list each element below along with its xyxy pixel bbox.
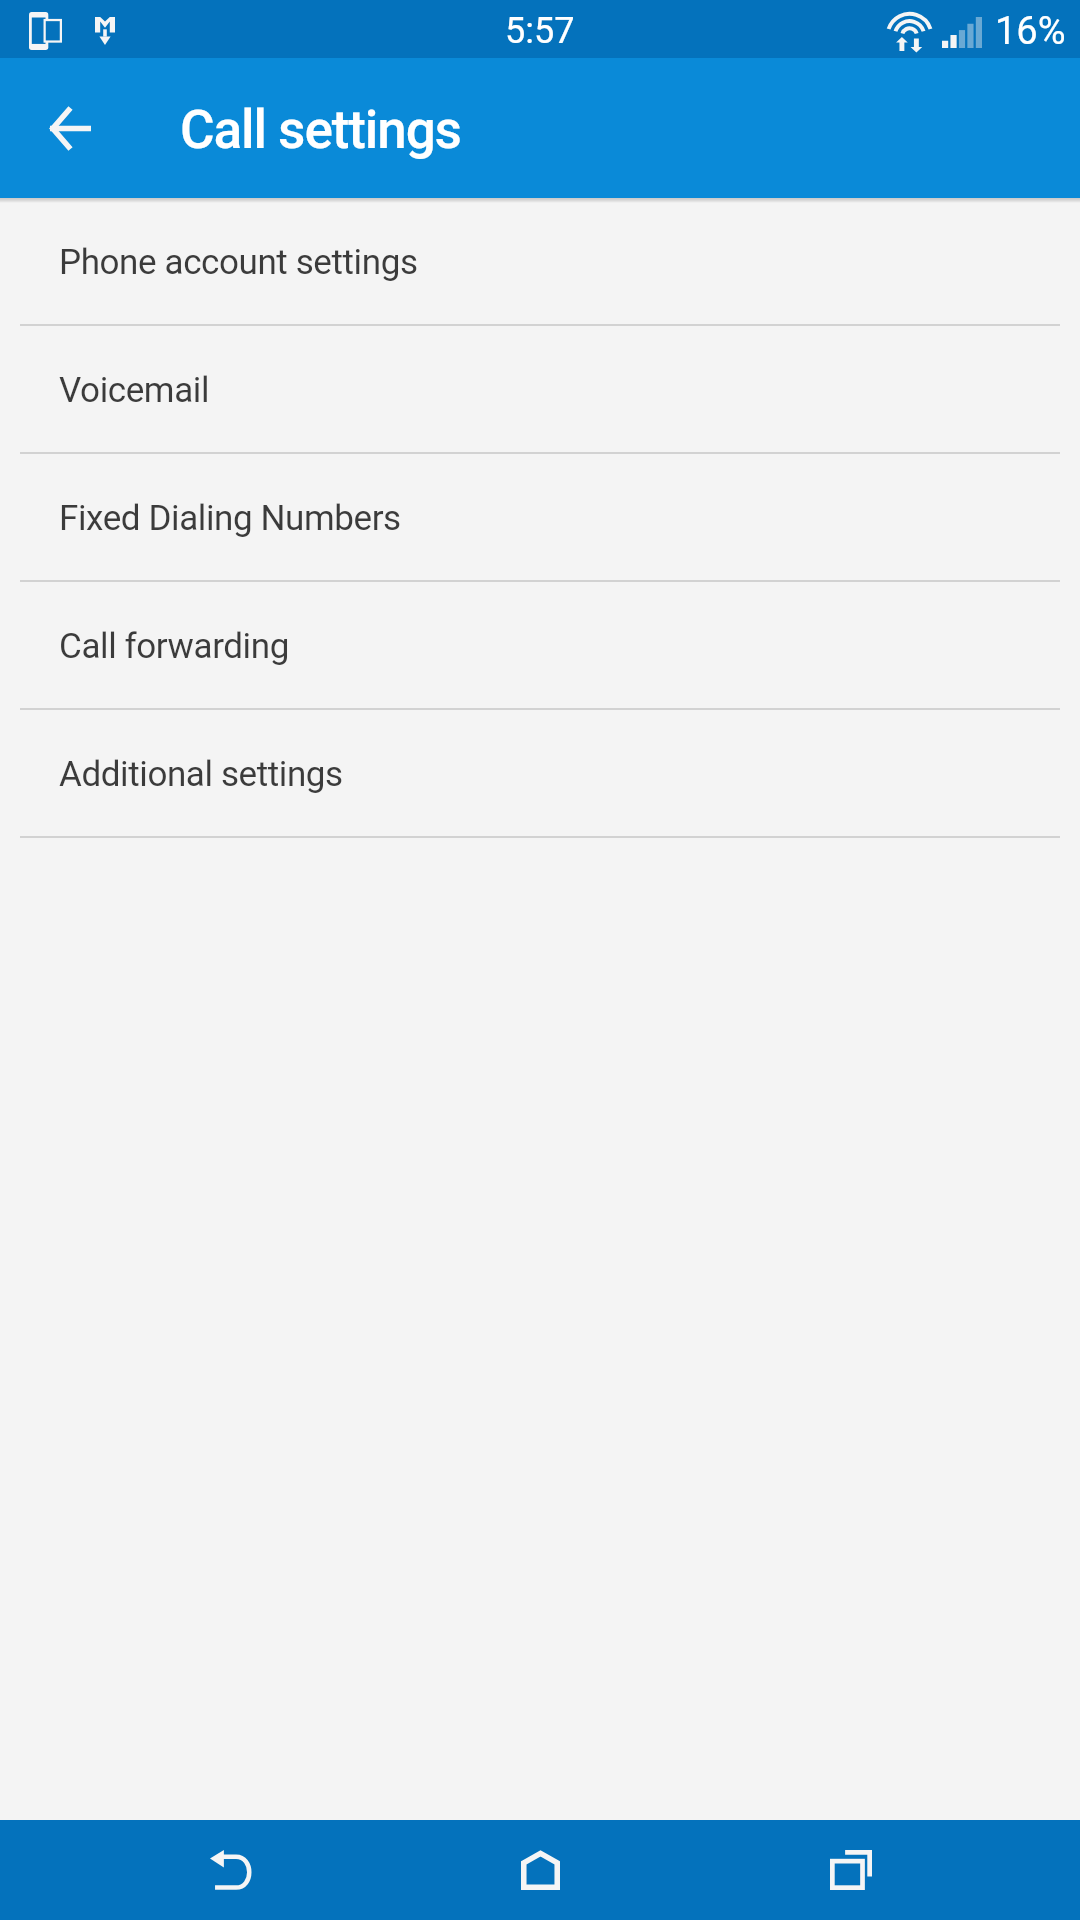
staticText: Call settings [180, 99, 461, 161]
staticText: 16% [995, 9, 1066, 54]
staticText: Voicemail [59, 370, 210, 411]
button[interactable]: Fixed Dialing Numbers [0, 454, 1080, 582]
button[interactable]: Navigate up [22, 80, 118, 176]
button[interactable]: Home [480, 1820, 600, 1920]
staticText: Additional settings [59, 754, 343, 795]
staticText: 5:57 [505, 10, 575, 52]
button[interactable]: Phone account settings [0, 198, 1080, 326]
staticText: Call forwarding [59, 626, 289, 667]
button[interactable]: Additional settings [0, 710, 1080, 838]
staticText: Phone account settings [59, 242, 418, 283]
staticText: Fixed Dialing Numbers [59, 498, 401, 539]
button[interactable]: Voicemail [0, 326, 1080, 454]
button[interactable]: Back [171, 1820, 291, 1920]
button[interactable]: Recent apps [791, 1820, 911, 1920]
button[interactable]: Call forwarding [0, 582, 1080, 710]
